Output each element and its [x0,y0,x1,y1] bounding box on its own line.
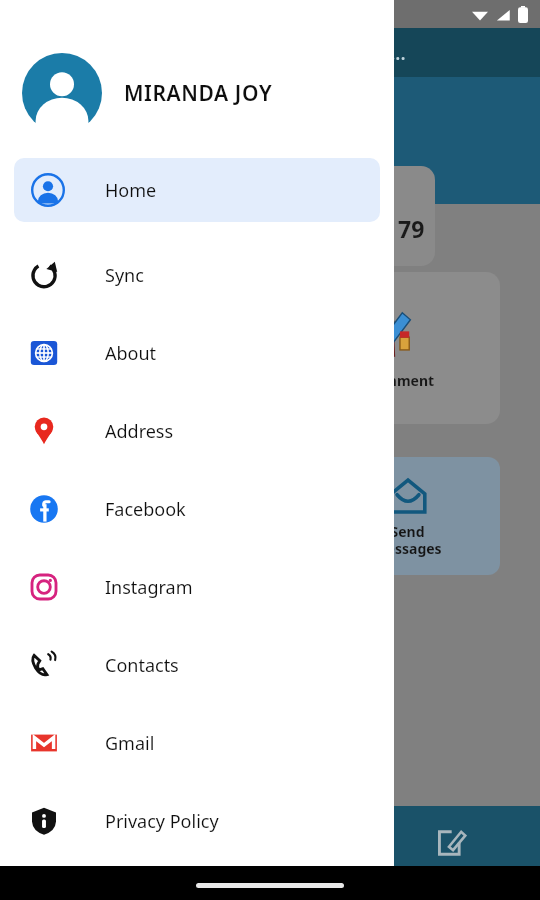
button[interactable]: Contacts [0,626,394,704]
button[interactable]: Instagram [0,548,394,626]
staticText: Privacy Policy [105,809,219,834]
button[interactable]: Job Opening [411,825,491,881]
button[interactable]: Privacy Policy [0,782,394,860]
button[interactable]: About [0,314,394,392]
staticText: Assignment [351,371,435,390]
staticText: Gmail [105,731,155,756]
button[interactable]: Send Messages [315,457,500,575]
button[interactable]: Gmail [0,704,394,782]
staticText: Contacts [105,653,179,678]
staticText: 79 [398,213,425,244]
button[interactable]: Home [14,158,380,222]
staticText: Instagram [105,575,193,600]
staticText: Address [105,419,174,444]
staticText: Home [105,178,157,203]
staticText: O... [376,40,406,66]
staticText: Job Opening [411,863,491,881]
staticText: MIRANDA JOY [124,79,273,108]
staticText: Send Messages [373,522,442,558]
button[interactable]: Sync [0,236,394,314]
button[interactable]: Facebook [0,470,394,548]
staticText: Facebook [105,497,186,522]
staticText: Sync [105,263,144,288]
staticText: About [105,341,157,366]
button[interactable]: Address [0,392,394,470]
button[interactable]: Assignment [285,272,500,424]
